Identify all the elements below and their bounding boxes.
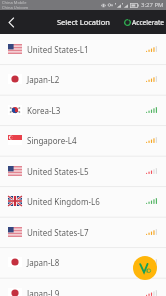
button[interactable]: United States-L1 <box>0 35 166 66</box>
button[interactable]: United States-L5 <box>0 157 166 188</box>
staticText: Select Location <box>57 17 110 27</box>
staticText: United Kingdom-L6 <box>27 196 100 207</box>
staticText: China Unicom <box>2 5 29 10</box>
staticText: Japan-L2 <box>27 74 60 85</box>
staticText: United States-L1 <box>27 44 89 55</box>
button[interactable]: United Kingdom-L6 <box>0 187 166 218</box>
staticText: Accelerate <box>132 18 165 27</box>
button[interactable]: Korea-L3 <box>0 96 166 127</box>
button[interactable]: Japan-L2 <box>0 65 166 96</box>
button[interactable]: Accelerate <box>124 18 165 27</box>
button[interactable]: United States-L7 <box>0 218 166 249</box>
staticText: United States-L7 <box>27 227 89 238</box>
staticText: United States-L5 <box>27 166 89 177</box>
button[interactable]: Singapore-L4 <box>0 126 166 157</box>
staticText: Japan-L8 <box>27 257 60 268</box>
button[interactable]: Japan-L9 <box>0 279 166 296</box>
button[interactable]: Back <box>0 11 22 33</box>
staticText: 3:27 PM <box>141 1 164 9</box>
button[interactable]: Connect VPN <box>133 256 157 280</box>
staticText: Korea-L3 <box>27 105 61 116</box>
staticText: China Mobile <box>2 0 27 5</box>
staticText: Singapore-L4 <box>27 135 77 146</box>
button[interactable]: Japan-L8 <box>0 248 166 279</box>
staticText: Japan-L9 <box>27 288 60 296</box>
